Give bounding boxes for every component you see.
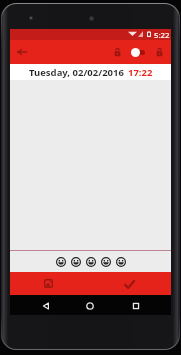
staticText: Tuesday, 02/02/2016: [29, 66, 124, 79]
button[interactable]: Save: [119, 274, 139, 294]
button[interactable]: Attach image: [38, 273, 58, 293]
button[interactable]: Back: [36, 296, 55, 315]
button[interactable]: Emoji: [113, 253, 128, 271]
button[interactable]: Emoji: [98, 253, 113, 271]
button[interactable]: Toggle switch: [128, 43, 148, 61]
button[interactable]: Emoji: [68, 253, 83, 271]
button[interactable]: Lock: [150, 43, 169, 62]
button[interactable]: Emoji: [83, 253, 98, 271]
button[interactable]: Emoji: [53, 253, 68, 271]
button[interactable]: Recent apps: [126, 296, 145, 315]
button[interactable]: Back: [12, 42, 32, 62]
button[interactable]: Lock: [108, 43, 127, 62]
staticText: 5:22: [154, 30, 170, 41]
button[interactable]: Home: [80, 296, 99, 315]
staticText: 17:22: [128, 66, 153, 79]
